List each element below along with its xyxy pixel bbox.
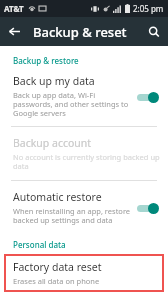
button[interactable]: Back [0,17,29,46]
button[interactable]: Toggle [136,201,160,215]
staticText: Back up app data, Wi-Fi passwords, and o… [13,90,129,119]
staticText: Back up my data [13,74,95,88]
staticText: No account is currently storing backed u… [13,152,160,172]
staticText: AT&T [4,3,24,14]
staticText: Factory data reset [13,260,102,274]
staticText: Backup & restore [13,55,79,66]
button[interactable]: Automatic restore [0,188,168,228]
staticText: Automatic restore [13,190,102,204]
button[interactable]: Toggle [136,90,160,104]
staticText: When reinstalling an app, restore backed… [13,206,131,226]
staticText: Personal data [13,239,66,250]
button[interactable]: Back up my data [0,72,168,121]
button[interactable]: Backup account [0,134,168,174]
staticText: 2:05 pm [133,3,164,14]
staticText: Backup & reset [33,23,127,41]
staticText: Backup account [13,136,92,150]
button[interactable]: Search [139,17,168,46]
staticText: Erases all data on phone [13,276,100,286]
button[interactable]: Factory data reset [4,254,164,292]
